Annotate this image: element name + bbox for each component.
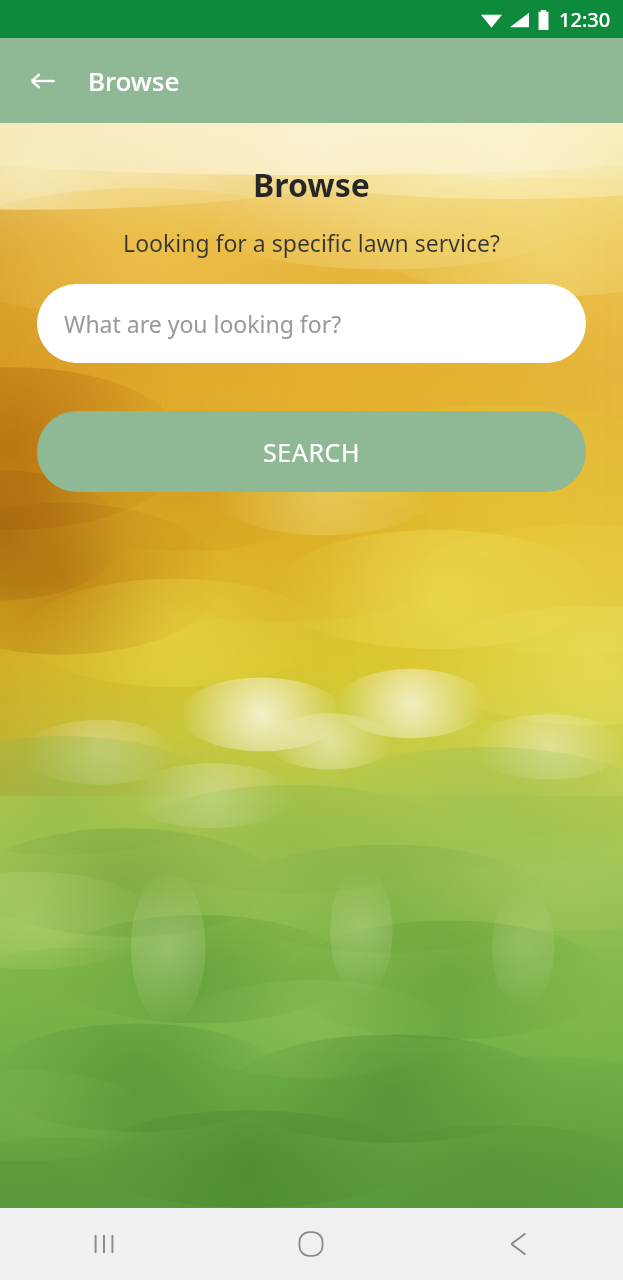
staticText: What are you looking for? [64, 308, 342, 339]
button[interactable]: Back [415, 1208, 623, 1280]
staticText: Browse [88, 63, 180, 98]
staticText: Looking for a specific lawn service? [123, 227, 500, 258]
staticText: 12:30 [559, 6, 611, 33]
button[interactable]: Home [207, 1208, 415, 1280]
staticText: SEARCH [263, 435, 361, 469]
staticText: Browse [253, 163, 370, 207]
button[interactable]: SEARCH [37, 411, 586, 492]
button[interactable]: Back [16, 54, 70, 108]
button[interactable]: What are you looking for? [37, 284, 586, 363]
button[interactable]: Recent apps [0, 1208, 207, 1280]
